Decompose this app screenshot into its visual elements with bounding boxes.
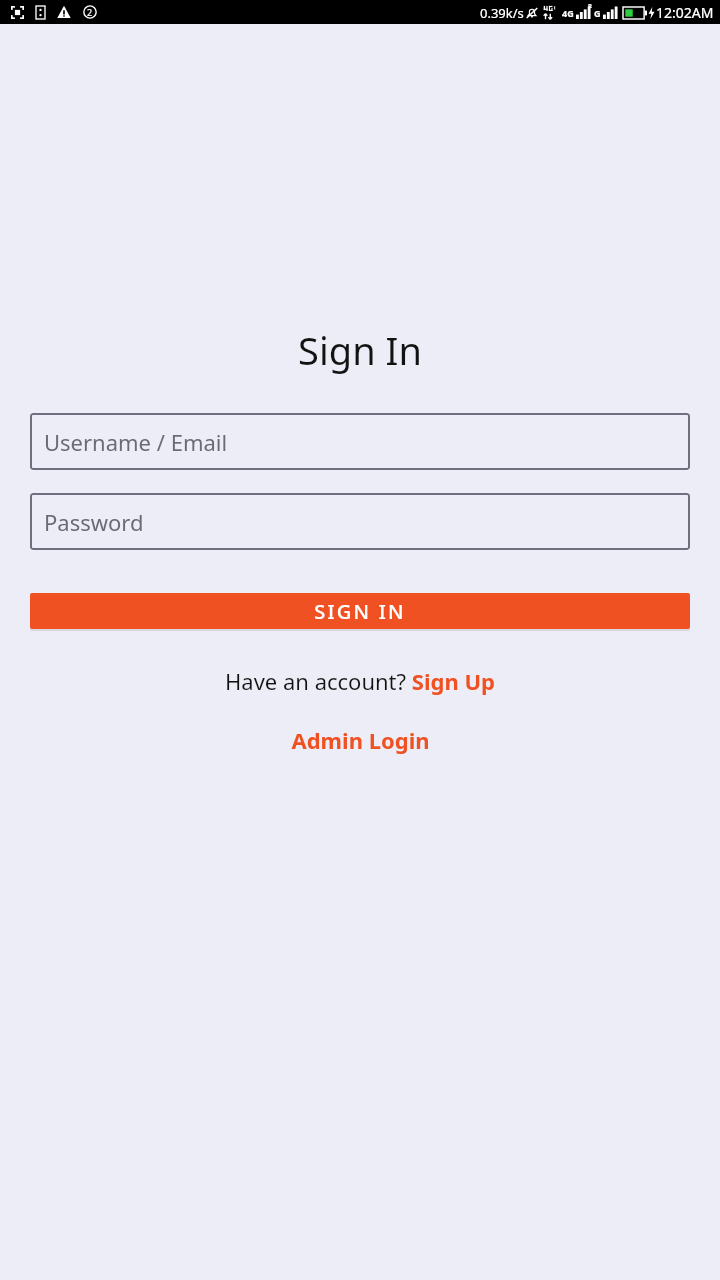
staticText: 12:02AM	[656, 3, 714, 22]
staticText: 2	[87, 6, 93, 18]
staticText: Have an account? Sign Up	[225, 666, 495, 696]
staticText: R	[588, 2, 592, 10]
staticText: Password	[44, 507, 144, 537]
button[interactable]: Username / Email	[30, 413, 690, 470]
staticText: 0.39k/s	[480, 4, 524, 22]
button[interactable]: SIGN IN	[30, 593, 690, 629]
button[interactable]: Have an account? Sign Up	[0, 666, 720, 696]
staticText: Username / Email	[44, 427, 228, 457]
staticText: G	[594, 7, 601, 19]
button[interactable]: Admin Login	[0, 725, 720, 755]
staticText: SIGN IN	[314, 598, 406, 625]
staticText: Admin Login	[291, 725, 430, 755]
staticText: Sign In	[0, 324, 720, 376]
staticText: 4G	[562, 7, 574, 19]
button[interactable]: Password	[30, 493, 690, 550]
